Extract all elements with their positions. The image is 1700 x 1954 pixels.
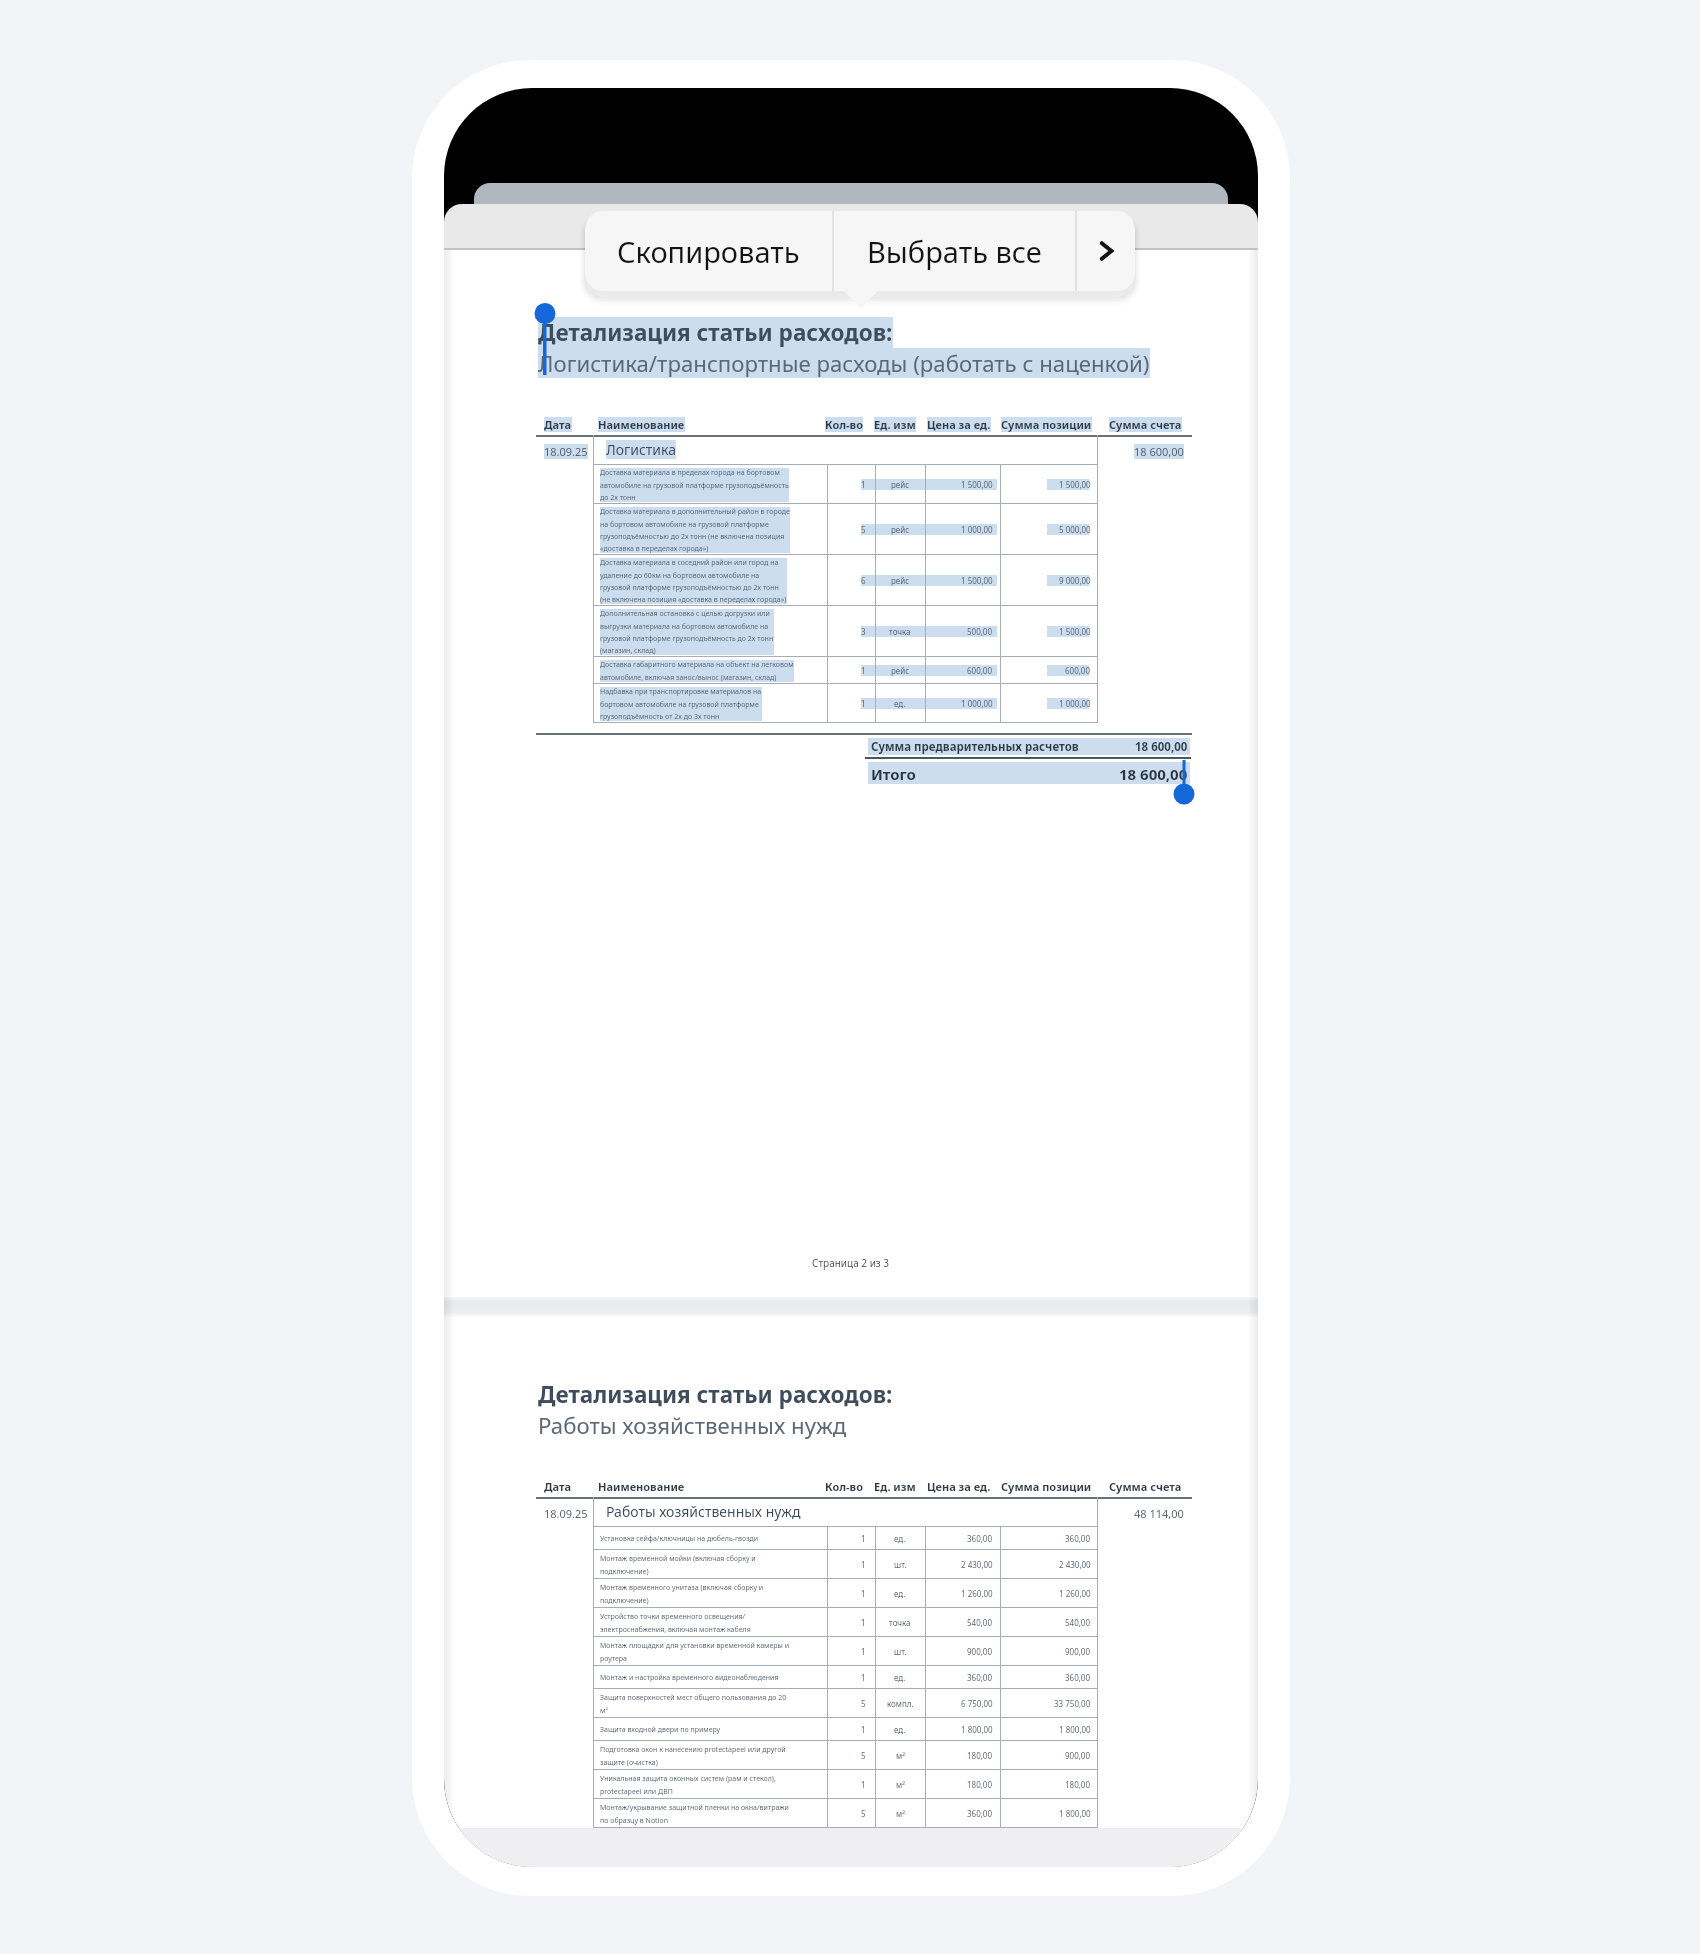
- staticText: 600,00: [1065, 665, 1091, 676]
- staticText: 5: [861, 1698, 866, 1709]
- staticText: 900,00: [1065, 1646, 1091, 1657]
- staticText: Наименование: [598, 1479, 685, 1494]
- staticText: Работы хозяйственных нужд: [606, 1502, 801, 1521]
- staticText: 1: [861, 698, 866, 709]
- staticText: 1 800,00: [961, 1724, 993, 1735]
- staticText: Монтаж и настройка временного видеонаблю…: [600, 1673, 779, 1683]
- staticText: Ед. изм: [874, 1479, 916, 1494]
- staticText: 180,00: [967, 1750, 993, 1761]
- staticText: 1 000,00: [961, 698, 993, 709]
- staticText: точка: [889, 626, 911, 637]
- staticText: 360,00: [967, 1533, 993, 1544]
- staticText: Установка сейфа/ключницы на дюбель-гвозд…: [600, 1534, 759, 1544]
- staticText: Подготовка окон к нанесению protectapeel…: [600, 1745, 786, 1767]
- staticText: ед.: [894, 1533, 906, 1544]
- staticText: 1 800,00: [1059, 1808, 1091, 1819]
- staticText: 5 000,00: [1059, 524, 1091, 535]
- staticText: 900,00: [1065, 1750, 1091, 1761]
- staticText: 1 000,00: [1059, 698, 1091, 709]
- staticText: Монтаж/укрывание защитной пленки на окна…: [600, 1803, 789, 1825]
- staticText: 600,00: [967, 665, 993, 676]
- staticText: 180,00: [967, 1779, 993, 1790]
- staticText: 500,00: [967, 626, 993, 637]
- staticText: ед.: [894, 1724, 906, 1735]
- staticText: 5: [861, 524, 866, 535]
- staticText: 18 600,00: [1119, 764, 1188, 784]
- staticText: 48 114,00: [1134, 1506, 1184, 1521]
- staticText: 360,00: [967, 1808, 993, 1819]
- staticText: Сумма позиции: [1001, 417, 1092, 432]
- staticText: 1 260,00: [961, 1588, 993, 1599]
- staticText: 1: [861, 479, 866, 490]
- staticText: Страница 2 из 3: [812, 1256, 890, 1270]
- staticText: 540,00: [1065, 1617, 1091, 1628]
- staticText: 5: [861, 1750, 866, 1761]
- staticText: Логистика: [606, 440, 676, 459]
- staticText: Сумма предварительных расчетов: [871, 739, 1079, 755]
- staticText: 2 430,00: [1059, 1559, 1091, 1570]
- staticText: 900,00: [967, 1646, 993, 1657]
- staticText: точка: [889, 1617, 911, 1628]
- staticText: Монтаж временного унитаза (включая сборк…: [600, 1583, 764, 1605]
- staticText: рейс: [891, 524, 910, 535]
- button[interactable]: More options: [1077, 211, 1135, 291]
- staticText: Кол-во: [825, 417, 863, 432]
- staticText: 360,00: [1065, 1672, 1091, 1683]
- staticText: Надбавка при транспортировке материалов …: [600, 687, 762, 721]
- staticText: 1: [861, 1724, 866, 1735]
- staticText: 1: [861, 665, 866, 676]
- staticText: 1: [861, 1588, 866, 1599]
- staticText: 1 260,00: [1059, 1588, 1091, 1599]
- staticText: 33 750,00: [1054, 1698, 1091, 1709]
- staticText: м²: [896, 1779, 905, 1790]
- staticText: рейс: [891, 665, 910, 676]
- staticText: 2 430,00: [961, 1559, 993, 1570]
- staticText: 1 500,00: [961, 479, 993, 490]
- staticText: ед.: [894, 698, 906, 709]
- staticText: 18 600,00: [1134, 444, 1184, 459]
- staticText: Доставка габаритного материала на объект…: [600, 660, 794, 682]
- staticText: 360,00: [967, 1672, 993, 1683]
- staticText: м²: [896, 1750, 905, 1761]
- staticText: Защита поверхностей мест общего пользова…: [600, 1693, 787, 1715]
- staticText: ед.: [894, 1588, 906, 1599]
- staticText: Итого: [871, 764, 916, 784]
- button[interactable]: Выбрать все: [834, 211, 1075, 291]
- staticText: Дополнительная остановка с целью догрузк…: [600, 609, 774, 655]
- button[interactable]: Скопировать: [585, 211, 832, 291]
- staticText: 18.09.25: [544, 1506, 588, 1521]
- staticText: Сумма счета: [1109, 1479, 1182, 1494]
- staticText: 360,00: [1065, 1533, 1091, 1544]
- staticText: Сумма счета: [1109, 417, 1182, 432]
- staticText: Дата: [544, 417, 572, 432]
- staticText: 1: [861, 1779, 866, 1790]
- staticText: Защита входной двери по примеру: [600, 1725, 721, 1735]
- staticText: Цена за ед.: [927, 417, 991, 432]
- staticText: м²: [896, 1808, 905, 1819]
- staticText: 1: [861, 1559, 866, 1570]
- staticText: 1: [861, 1617, 866, 1628]
- staticText: 1 500,00: [961, 575, 993, 586]
- staticText: 1 000,00: [961, 524, 993, 535]
- staticText: 1 500,00: [1059, 479, 1091, 490]
- staticText: 1: [861, 1646, 866, 1657]
- staticText: Детализация статьи расходов:: [538, 317, 893, 348]
- staticText: Уникальная защита оконных систем (рам и …: [600, 1774, 776, 1796]
- staticText: компл.: [887, 1698, 914, 1709]
- staticText: шт.: [894, 1646, 907, 1657]
- staticText: Монтаж площадки для установки временной …: [600, 1641, 790, 1663]
- staticText: шт.: [894, 1559, 907, 1570]
- staticText: 6 750,00: [961, 1698, 993, 1709]
- staticText: Наименование: [598, 417, 685, 432]
- staticText: 5: [861, 1808, 866, 1819]
- staticText: Доставка материала в соседний район или …: [600, 558, 787, 604]
- staticText: Сумма позиции: [1001, 1479, 1092, 1494]
- staticText: рейс: [891, 479, 910, 490]
- staticText: 18.09.25: [544, 444, 588, 459]
- staticText: Детализация статьи расходов:: [538, 1379, 893, 1410]
- staticText: 9 000,00: [1059, 575, 1091, 586]
- staticText: 180,00: [1065, 1779, 1091, 1790]
- staticText: рейс: [891, 575, 910, 586]
- staticText: Кол-во: [825, 1479, 863, 1494]
- staticText: Скопировать: [617, 232, 800, 271]
